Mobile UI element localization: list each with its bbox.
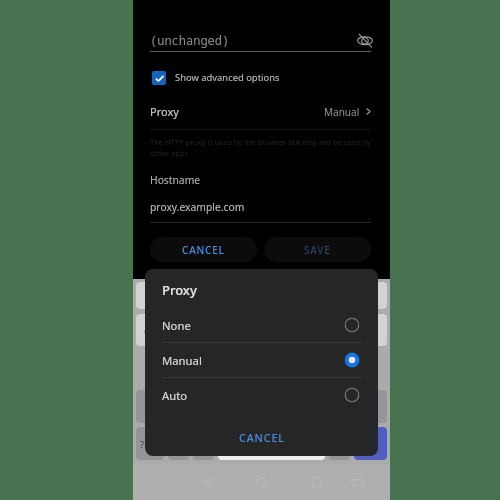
button[interactable]: 1 (136, 282, 157, 309)
staticText: 2 (169, 290, 175, 302)
button[interactable]: w (161, 314, 182, 346)
staticText: CANCEL (182, 243, 225, 257)
button[interactable]: SAVE (264, 237, 371, 262)
button[interactable]: k (328, 352, 349, 384)
button[interactable]: t (236, 314, 257, 346)
staticText: 1 (144, 290, 150, 302)
staticText: Proxy (150, 104, 179, 119)
staticText: q (144, 324, 150, 336)
staticText: 3 (194, 290, 200, 302)
button[interactable]: p (365, 314, 387, 346)
button[interactable]: Auto (145, 378, 378, 412)
button[interactable]: u (287, 314, 309, 346)
staticText: ?123 (140, 438, 160, 450)
button[interactable]: i (313, 314, 335, 346)
button[interactable]: Backspace (353, 390, 387, 423)
staticText: o (347, 324, 353, 336)
button[interactable]: 3 (186, 282, 207, 309)
button[interactable]: f (227, 352, 249, 384)
button[interactable]: Show password (354, 31, 376, 49)
button[interactable]: Proxy (133, 101, 390, 122)
button[interactable]: CANCEL (229, 426, 295, 451)
button[interactable]: d (201, 352, 223, 384)
staticText: The HTTP proxy is used by the browser bu… (150, 137, 371, 158)
staticText: proxy.example.com (150, 200, 245, 214)
staticText: Manual (162, 353, 202, 368)
button[interactable]: Enter (354, 427, 387, 460)
staticText: SAVE (304, 243, 331, 257)
button[interactable]: . (329, 427, 350, 460)
button[interactable]: Manual (145, 343, 378, 378)
button[interactable]: g (253, 352, 274, 384)
button[interactable]: ?123 (136, 427, 164, 460)
button[interactable]: Emoji (193, 427, 214, 460)
staticText: Proxy (162, 281, 197, 299)
button[interactable]: a (149, 352, 171, 384)
button[interactable]: h (278, 352, 299, 384)
button[interactable]: m (327, 390, 349, 423)
staticText: Manual (324, 105, 360, 119)
button[interactable]: s (175, 352, 197, 384)
button[interactable]: r (211, 314, 232, 346)
button[interactable]: e (186, 314, 207, 346)
button[interactable]: CANCEL (150, 237, 257, 262)
button[interactable]: l (353, 352, 374, 384)
staticText: CANCEL (239, 431, 285, 446)
staticText: 0 (373, 290, 379, 302)
button[interactable]: o (339, 314, 361, 346)
button[interactable]: j (303, 352, 324, 384)
staticText: w (168, 324, 176, 336)
button[interactable]: , (168, 427, 189, 460)
button[interactable]: Shift (136, 390, 169, 423)
button[interactable]: q (136, 314, 157, 346)
button[interactable]: y (261, 314, 283, 346)
button[interactable]: z (173, 390, 194, 423)
button[interactable]: 2 (161, 282, 182, 309)
button[interactable]: Show advanced options (133, 66, 390, 89)
staticText: s (184, 362, 189, 374)
button[interactable]: 0 (365, 282, 387, 309)
button[interactable]: Space (218, 427, 325, 460)
button[interactable]: None (145, 308, 378, 343)
